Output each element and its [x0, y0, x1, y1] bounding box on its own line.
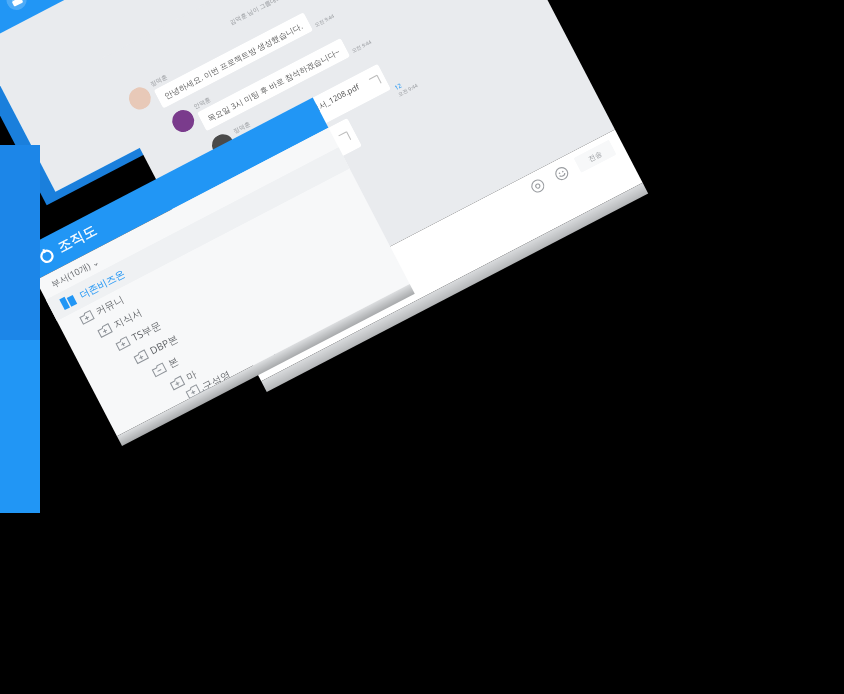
- staticText: 12: [393, 82, 403, 92]
- button[interactable]: Attach: [260, 339, 287, 366]
- button[interactable]: 전송: [573, 139, 617, 173]
- button[interactable]: 본: [149, 239, 396, 381]
- staticText: 오전 9:44: [351, 38, 373, 55]
- staticText: TS부문: [129, 317, 164, 344]
- staticText: 김덕훈 님이 그룹대화방을 생성했습니다. 2019.5.15 수요일: [228, 0, 371, 27]
- staticText: 정덕훈: [149, 73, 169, 88]
- staticText: 오전 9:44: [397, 82, 420, 98]
- button[interactable]: 구석영: [185, 275, 410, 398]
- button[interactable]: 안녕하세요. 이번 프로젝트방 생성했습니다.: [162, 20, 305, 101]
- staticText: 전송: [587, 149, 603, 163]
- button[interactable]: Emoji: [548, 160, 575, 187]
- button[interactable]: 목요일 3시 미팅 후 바로 참석하겠습니다~: [205, 45, 342, 124]
- button[interactable]: TS부문: [113, 204, 377, 355]
- button[interactable]: Mention: [524, 172, 551, 199]
- button[interactable]: 더존비즈온: [56, 147, 350, 315]
- button[interactable]: 연락처: [261, 126, 353, 187]
- staticText: DBP본: [147, 331, 180, 357]
- staticText: 지식서: [111, 306, 144, 331]
- staticText: 프로젝트(19): [26, 0, 112, 1]
- staticText: 부서(10개) ⌄: [49, 255, 101, 290]
- button[interactable]: 지식서: [95, 186, 368, 342]
- button[interactable]: Back: [0, 0, 8, 29]
- staticText: 김덕훈 대리: [287, 145, 330, 175]
- staticText: 커뮤니: [93, 293, 126, 318]
- button[interactable]: 마: [167, 257, 405, 394]
- staticText: 안녕하세요. 이번 프로젝트방 생성했습니다.: [162, 20, 305, 101]
- staticText: 더존비즈온: [77, 267, 127, 302]
- staticText: 본: [166, 354, 181, 370]
- staticText: 정덕훈: [232, 120, 252, 135]
- staticText: 조직도: [55, 221, 100, 257]
- staticText: 목요일 3시 미팅 후 바로 참석하겠습니다~: [205, 45, 342, 124]
- button[interactable]: 모바일 상세 기획서_1208.pdf: [244, 71, 383, 156]
- staticText: 오전 9:44: [313, 12, 336, 29]
- staticText: 안덕훈: [192, 95, 212, 111]
- button[interactable]: 커뮤니: [76, 169, 359, 329]
- staticText: 구석영: [200, 368, 231, 390]
- staticText: 마: [184, 367, 199, 384]
- staticText: 모바일 상세 기획서_1208.pdf: [263, 81, 361, 139]
- button[interactable]: DBP본: [131, 222, 387, 368]
